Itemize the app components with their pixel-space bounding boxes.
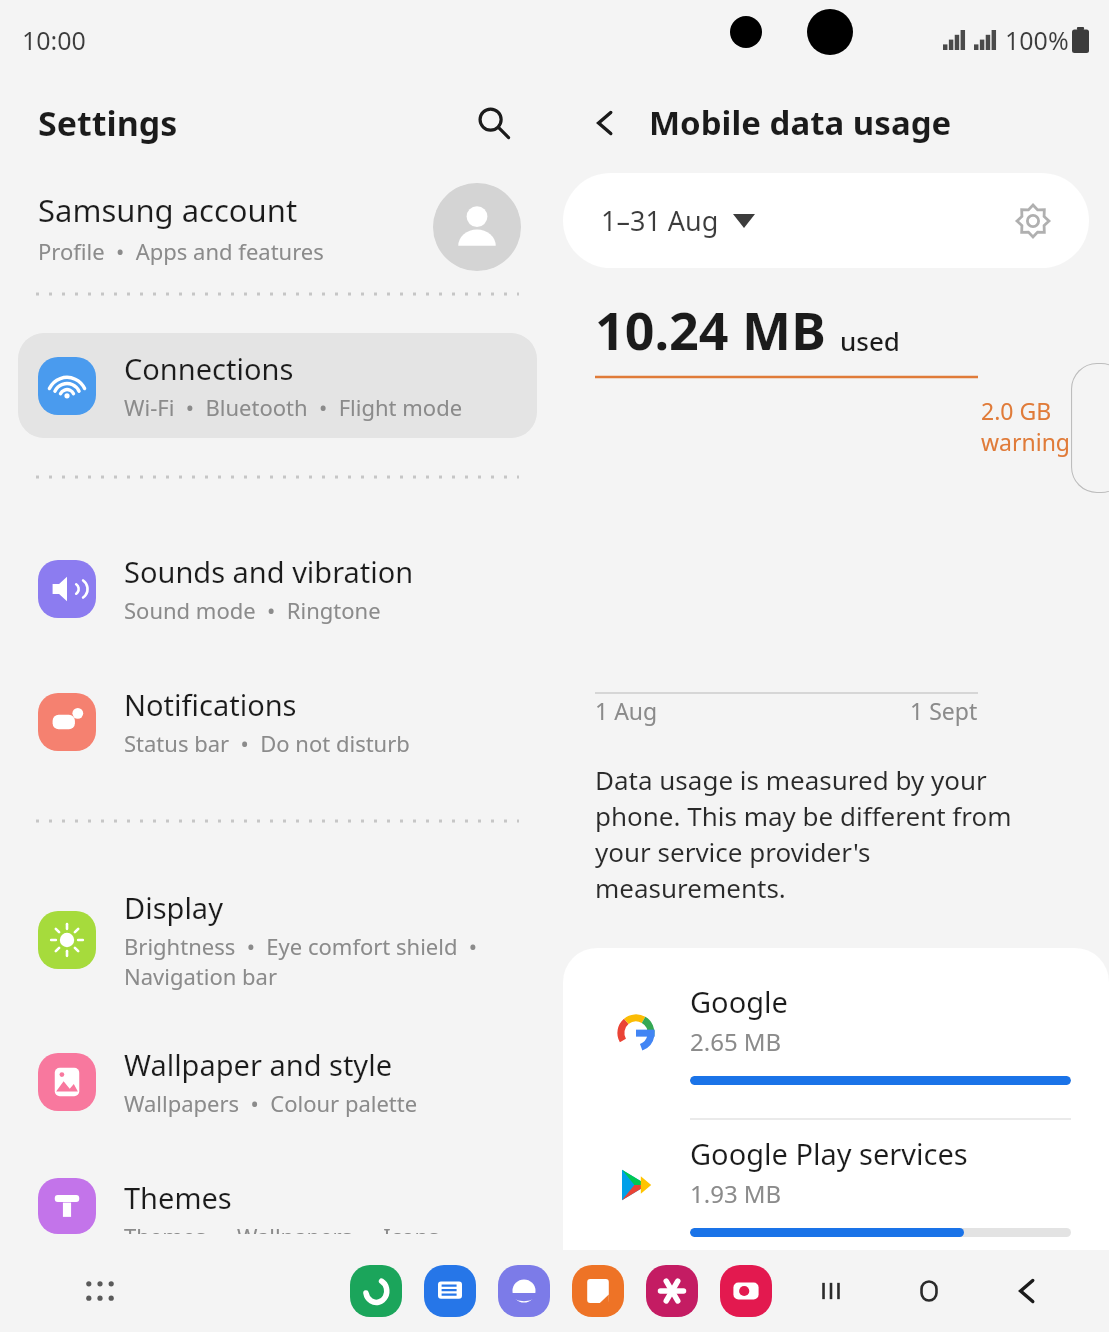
button[interactable]: Display — [0, 872, 555, 1007]
button[interactable]: Home — [899, 1261, 959, 1321]
staticText: 1 Sept — [910, 695, 978, 726]
staticText: Google — [690, 982, 788, 1021]
staticText: Wallpaper and style — [124, 1045, 392, 1084]
button[interactable]: Google — [563, 948, 1109, 1118]
staticText: 1 Aug — [595, 695, 658, 726]
staticText: Status bar • Do not disturb — [124, 728, 410, 758]
staticText: 10.24 MB — [595, 294, 826, 365]
staticText: Wi-Fi • Bluetooth • Flight mode — [124, 392, 463, 422]
button[interactable]: Settings — [1005, 193, 1061, 249]
button[interactable]: Apps — [74, 1265, 126, 1317]
button[interactable]: Wallpaper and style — [0, 1029, 555, 1134]
button[interactable]: App — [572, 1265, 624, 1317]
staticText: Google Play services — [690, 1134, 968, 1173]
button[interactable]: Samsung account — [0, 165, 555, 289]
staticText: Sound mode • Ringtone — [124, 595, 381, 625]
button[interactable]: Notifications — [0, 669, 555, 774]
button[interactable]: Google Play services — [563, 1120, 1109, 1250]
button[interactable]: App — [350, 1265, 402, 1317]
staticText: Profile • Apps and features — [38, 236, 324, 266]
staticText: Connections — [124, 349, 294, 388]
button[interactable]: Sounds and vibration — [0, 536, 555, 641]
staticText: Notifications — [124, 685, 297, 724]
staticText: Samsung account — [38, 189, 298, 231]
button[interactable]: App — [646, 1265, 698, 1317]
staticText: Themes — [124, 1178, 232, 1217]
staticText: Mobile data usage — [649, 100, 952, 145]
staticText: Display — [124, 888, 223, 927]
staticText: 1–31 Aug — [601, 202, 719, 239]
staticText: Wallpapers • Colour palette — [124, 1088, 418, 1118]
staticText: warning — [981, 426, 1070, 457]
button[interactable]: Themes — [0, 1162, 555, 1250]
button[interactable]: App — [720, 1265, 772, 1317]
button[interactable]: Back — [579, 97, 631, 149]
staticText: 10:00 — [22, 23, 86, 57]
staticText: 2.0 GB — [981, 395, 1052, 426]
staticText: Data usage is measured by your phone. Th… — [595, 762, 1049, 906]
button[interactable]: Back — [997, 1261, 1057, 1321]
button[interactable]: Search — [467, 96, 521, 150]
staticText: Sounds and vibration — [124, 552, 414, 591]
staticText: 1.93 MB — [690, 1177, 782, 1210]
staticText: 2.65 MB — [690, 1025, 782, 1058]
button[interactable]: App — [498, 1265, 550, 1317]
staticText: 100% — [1005, 23, 1069, 57]
staticText: Brightness • Eye comfort shield • Naviga… — [124, 931, 478, 991]
button[interactable]: App — [424, 1265, 476, 1317]
staticText: Settings — [38, 100, 178, 146]
staticText: Themes • Wallpapers • Icons — [124, 1221, 439, 1234]
button[interactable]: 1–31 Aug — [601, 202, 755, 239]
button[interactable]: Connections — [18, 333, 537, 438]
staticText: used — [840, 323, 900, 358]
button[interactable]: Recents — [801, 1261, 861, 1321]
